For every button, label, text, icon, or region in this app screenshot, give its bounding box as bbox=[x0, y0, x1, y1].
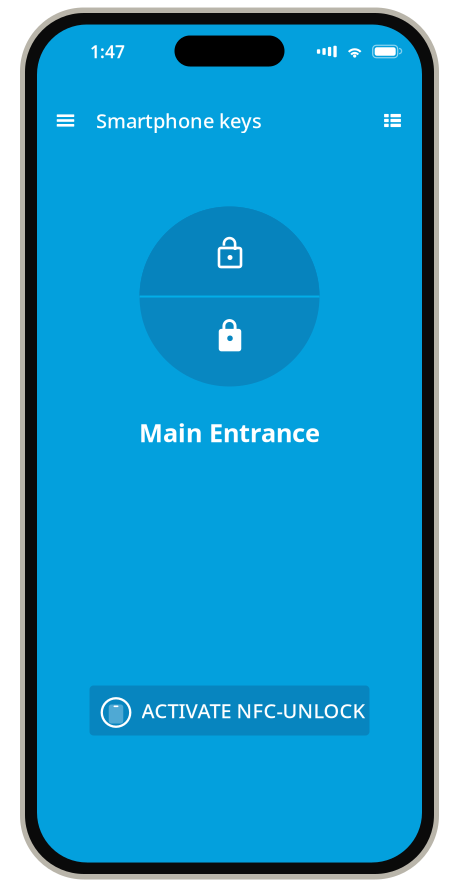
button[interactable]: ACTIVATE NFC-UNLOCK bbox=[89, 685, 369, 735]
button[interactable]: Menu bbox=[48, 98, 83, 142]
staticText: ACTIVATE NFC-UNLOCK bbox=[141, 697, 365, 724]
staticText: Main Entrance bbox=[139, 415, 320, 449]
staticText: Smartphone keys bbox=[96, 107, 262, 134]
button[interactable]: List view bbox=[378, 98, 407, 142]
button[interactable]: Toggle lock bbox=[139, 206, 319, 386]
staticText: 1:47 bbox=[90, 40, 125, 63]
